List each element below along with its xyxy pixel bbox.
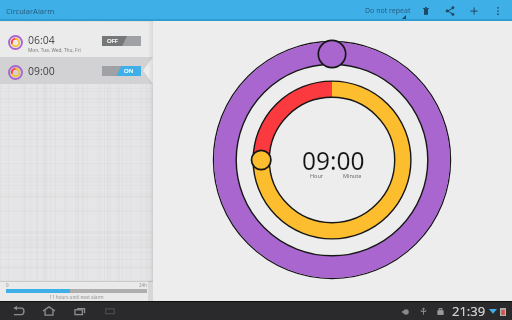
button[interactable]: Back <box>7 301 31 320</box>
staticText: 09:00 <box>28 64 55 78</box>
button[interactable]: Alarm on <box>102 66 141 76</box>
button[interactable]: 09:00 <box>0 57 153 84</box>
staticText: ON <box>124 67 134 75</box>
button[interactable]: 06:04 <box>0 22 153 58</box>
button[interactable]: Add alarm <box>462 0 486 21</box>
button[interactable]: Share <box>438 0 462 21</box>
staticText: 09:00 <box>302 144 365 177</box>
button[interactable]: Recent apps <box>68 301 92 320</box>
staticText: Minute <box>343 172 362 179</box>
staticText: 21:39 <box>452 302 486 320</box>
staticText: Do not repeat <box>365 6 411 16</box>
button[interactable]: Repeat mode <box>363 0 409 21</box>
staticText: Hour <box>310 172 324 179</box>
staticText: 0 <box>6 282 9 288</box>
button[interactable]: More options <box>486 0 510 21</box>
button[interactable]: Home <box>37 301 61 320</box>
button[interactable]: Screenshot <box>98 301 122 320</box>
staticText: 06:04 <box>28 33 55 47</box>
staticText: Mon, Tue, Wed, Thu, Fri <box>28 47 81 54</box>
staticText: OFF <box>107 37 118 45</box>
button[interactable]: Delete <box>414 0 438 21</box>
staticText: CircularAlarm <box>6 6 55 16</box>
button[interactable]: Alarm off <box>102 36 141 46</box>
staticText: 24h <box>139 282 147 288</box>
staticText: 11 hours until next alarm <box>0 294 153 300</box>
